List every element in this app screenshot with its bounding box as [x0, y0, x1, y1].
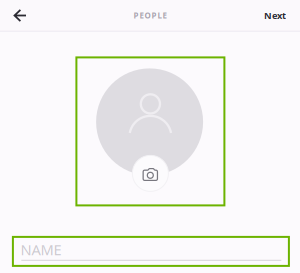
button[interactable]: Back — [0, 0, 40, 31]
staticText: P E O P L E — [133, 10, 166, 21]
staticText: NAME — [20, 240, 61, 259]
button[interactable]: Next — [264, 0, 300, 31]
staticText: Next — [264, 9, 286, 22]
button[interactable]: Change photo — [132, 155, 168, 191]
